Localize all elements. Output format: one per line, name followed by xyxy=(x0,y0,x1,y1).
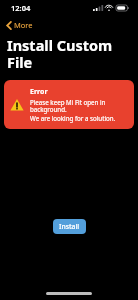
other: Warning xyxy=(10,98,24,112)
button[interactable]: More xyxy=(4,18,35,32)
staticText: More xyxy=(14,20,33,30)
staticText: Please keep Mi Fit open in background. xyxy=(30,98,126,114)
staticText: Install xyxy=(59,222,80,231)
staticText: We are looking for a solution. xyxy=(30,114,116,122)
other: Wi-Fi xyxy=(105,5,113,11)
staticText: Install Custom File xyxy=(7,35,138,72)
other: Cellular signal xyxy=(93,5,102,11)
other: Battery xyxy=(116,5,129,11)
button[interactable]: Install xyxy=(53,219,86,234)
staticText: 12:04 xyxy=(11,3,31,13)
staticText: Error xyxy=(30,87,48,97)
button[interactable]: Warning xyxy=(4,80,134,129)
